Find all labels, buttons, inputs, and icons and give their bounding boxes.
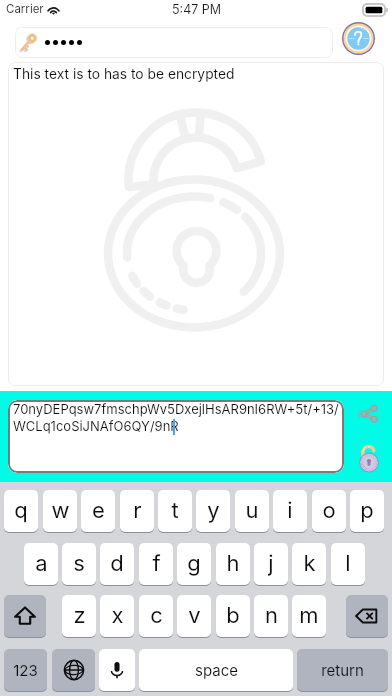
staticText: w bbox=[51, 497, 70, 524]
button[interactable]: p bbox=[350, 490, 384, 532]
staticText: 5:47 PM bbox=[172, 2, 222, 17]
staticText: c bbox=[150, 602, 163, 629]
staticText: y bbox=[207, 497, 220, 524]
button[interactable]: 70nyDEPqsw7fmschpWv5DxejlHsAR9nI6RW+5t/+… bbox=[8, 400, 344, 473]
button[interactable]: Share bbox=[353, 398, 385, 430]
button[interactable]: q bbox=[4, 490, 38, 532]
staticText: p bbox=[360, 497, 374, 524]
button[interactable]: This text is to has to be encrypted bbox=[8, 62, 384, 386]
button[interactable]: Help bbox=[342, 22, 375, 55]
staticText: return bbox=[321, 661, 364, 679]
staticText: 123 bbox=[13, 661, 38, 679]
button[interactable]: i bbox=[273, 490, 307, 532]
staticText: v bbox=[188, 602, 201, 629]
staticText: t bbox=[171, 497, 179, 524]
button[interactable]: v bbox=[177, 595, 211, 637]
staticText: g bbox=[187, 550, 201, 577]
button[interactable]: m bbox=[292, 595, 326, 637]
button[interactable]: space bbox=[139, 649, 293, 691]
staticText: u bbox=[245, 497, 259, 524]
staticText: f bbox=[152, 550, 161, 577]
button[interactable]: Shift bbox=[4, 595, 46, 637]
staticText: This text is to has to be encrypted bbox=[13, 66, 235, 83]
staticText: r bbox=[133, 497, 142, 524]
button[interactable]: e bbox=[81, 490, 115, 532]
staticText: d bbox=[110, 550, 124, 577]
button[interactable]: f bbox=[139, 543, 173, 585]
staticText: b bbox=[226, 602, 240, 629]
button[interactable]: g bbox=[177, 543, 211, 585]
button[interactable]: Dictate bbox=[99, 649, 135, 691]
staticText: z bbox=[73, 602, 86, 629]
button[interactable]: k bbox=[292, 543, 326, 585]
button[interactable]: h bbox=[216, 543, 250, 585]
button[interactable]: a bbox=[24, 543, 58, 585]
staticText: q bbox=[14, 497, 28, 524]
staticText: j bbox=[268, 550, 274, 577]
staticText: e bbox=[92, 497, 105, 524]
button[interactable]: d bbox=[100, 543, 134, 585]
button[interactable]: j bbox=[254, 543, 288, 585]
staticText: s bbox=[73, 550, 85, 577]
button[interactable]: Encrypt bbox=[353, 440, 385, 472]
button[interactable]: 123 bbox=[4, 649, 47, 691]
staticText: o bbox=[322, 497, 336, 524]
staticText: space bbox=[195, 661, 238, 679]
button[interactable]: c bbox=[139, 595, 173, 637]
staticText: a bbox=[35, 550, 48, 577]
staticText: m bbox=[299, 602, 319, 629]
button[interactable]: y bbox=[196, 490, 230, 532]
button[interactable]: o bbox=[312, 490, 346, 532]
button[interactable]: r bbox=[120, 490, 154, 532]
button[interactable]: b bbox=[216, 595, 250, 637]
staticText: n bbox=[265, 602, 278, 629]
staticText: l bbox=[345, 550, 351, 577]
button[interactable]: t bbox=[158, 490, 192, 532]
button[interactable]: Backspace bbox=[346, 595, 388, 637]
staticText: 70nyDEPqsw7fmschpWv5DxejlHsAR9nI6RW+5t/+… bbox=[13, 401, 339, 434]
button[interactable]: u bbox=[235, 490, 269, 532]
button[interactable]: return bbox=[297, 649, 388, 691]
button[interactable]: Switch keyboard bbox=[52, 649, 95, 691]
staticText: h bbox=[226, 550, 240, 577]
button[interactable]: z bbox=[62, 595, 96, 637]
button[interactable]: s bbox=[62, 543, 96, 585]
staticText: Carrier bbox=[6, 2, 44, 16]
button[interactable]: x bbox=[100, 595, 134, 637]
button[interactable]: l bbox=[331, 543, 365, 585]
button[interactable]: n bbox=[254, 595, 288, 637]
staticText: x bbox=[111, 602, 124, 629]
staticText: i bbox=[287, 497, 293, 524]
staticText: k bbox=[303, 550, 316, 577]
button[interactable]: w bbox=[43, 490, 77, 532]
button[interactable] bbox=[15, 27, 333, 58]
